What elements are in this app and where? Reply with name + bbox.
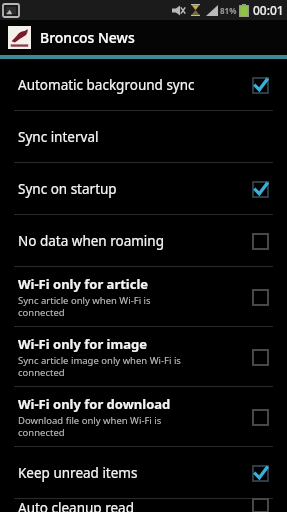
button[interactable]: Auto cleanup read xyxy=(0,499,287,512)
staticText: Wi-Fi only for image xyxy=(18,335,147,353)
button[interactable]: Unchecked xyxy=(247,499,273,512)
staticText: Sync article only when Wi-Fi is connecte… xyxy=(18,294,151,318)
staticText: Wi-Fi only for article xyxy=(18,275,149,293)
button[interactable]: Checked xyxy=(247,72,273,98)
button[interactable]: Sync on startup xyxy=(0,163,287,214)
button[interactable]: Unchecked xyxy=(247,284,273,310)
button[interactable]: Unchecked xyxy=(247,404,273,430)
button[interactable]: Checked xyxy=(247,460,273,486)
staticText: Download file only when Wi-Fi is connect… xyxy=(18,414,162,438)
button[interactable]: Keep unread items xyxy=(0,447,287,498)
staticText: 81% xyxy=(220,5,237,16)
button[interactable]: Wi-Fi only for image xyxy=(0,327,287,386)
staticText: Sync article image only when Wi-Fi is co… xyxy=(18,354,181,378)
button[interactable]: Checked xyxy=(247,176,273,202)
staticText: No data when roaming xyxy=(18,232,164,250)
other: App icon xyxy=(8,26,31,49)
button[interactable]: Sync interval xyxy=(0,111,287,162)
staticText: 00:01 xyxy=(253,2,284,18)
staticText: Sync interval xyxy=(18,128,99,146)
staticText: Sync on startup xyxy=(18,180,117,198)
staticText: Wi-Fi only for download xyxy=(18,395,171,413)
button[interactable]: Automatic background sync xyxy=(0,59,287,110)
button[interactable]: Wi-Fi only for article xyxy=(0,267,287,326)
button[interactable]: Wi-Fi only for download xyxy=(0,387,287,446)
staticText: Broncos News xyxy=(40,28,135,47)
button[interactable]: App icon xyxy=(0,20,287,55)
button[interactable]: Unchecked xyxy=(247,344,273,370)
staticText: Automatic background sync xyxy=(18,76,195,94)
staticText: Keep unread items xyxy=(18,464,138,482)
button[interactable]: Unchecked xyxy=(247,228,273,254)
button[interactable]: No data when roaming xyxy=(0,215,287,266)
staticText: Auto cleanup read xyxy=(18,499,134,512)
